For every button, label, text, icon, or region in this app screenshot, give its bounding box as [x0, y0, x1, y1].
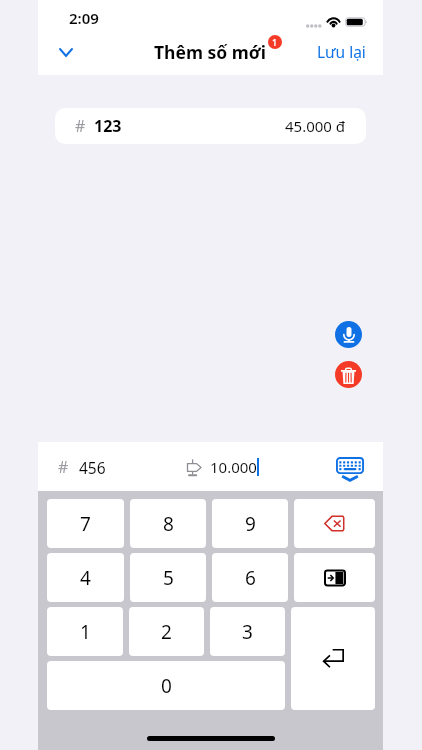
- staticText: 0: [161, 673, 172, 699]
- button[interactable]: Delete: [335, 361, 362, 388]
- staticText: #: [58, 456, 69, 478]
- button[interactable]: Backspace: [294, 499, 375, 548]
- staticText: 1: [272, 36, 278, 48]
- staticText: Thêm số mới: [154, 40, 267, 64]
- staticText: 10.000: [210, 457, 257, 477]
- staticText: 2: [161, 619, 172, 645]
- staticText: 123: [94, 115, 122, 137]
- staticText: 3: [242, 619, 253, 645]
- button[interactable]: 1: [47, 607, 123, 656]
- button[interactable]: Tab: [294, 553, 375, 602]
- button[interactable]: 4: [47, 553, 124, 602]
- button[interactable]: 2: [129, 607, 204, 656]
- button[interactable]: Collapse: [46, 33, 86, 72]
- staticText: 4: [80, 565, 91, 591]
- button[interactable]: 0: [47, 661, 285, 710]
- button[interactable]: 3: [210, 607, 285, 656]
- button[interactable]: #: [55, 108, 366, 144]
- staticText: 2:09: [69, 8, 99, 28]
- staticText: 9: [245, 511, 256, 537]
- staticText: Lưu lại: [317, 41, 366, 62]
- staticText: 8: [163, 511, 174, 537]
- button[interactable]: Voice input: [335, 321, 362, 348]
- staticText: 456: [79, 457, 106, 478]
- staticText: 6: [245, 565, 256, 591]
- button[interactable]: 9: [212, 499, 288, 548]
- staticText: 1: [80, 619, 91, 645]
- button[interactable]: 5: [130, 553, 206, 602]
- button[interactable]: 7: [47, 499, 124, 548]
- staticText: 45.000 đ: [285, 116, 346, 136]
- button[interactable]: Lưu lại: [303, 35, 383, 68]
- button[interactable]: Hide keyboard: [333, 452, 367, 486]
- staticText: 7: [80, 511, 91, 537]
- staticText: 5: [163, 565, 174, 591]
- button[interactable]: 8: [130, 499, 206, 548]
- staticText: #: [75, 115, 86, 137]
- button[interactable]: Enter: [291, 607, 375, 710]
- button[interactable]: 6: [212, 553, 288, 602]
